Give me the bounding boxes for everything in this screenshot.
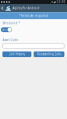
staticText: Scheduled * [2, 21, 19, 25]
staticText: 12:30 [57, 0, 66, 4]
staticText: Job History [9, 52, 24, 56]
button[interactable]: Job History [2, 51, 31, 57]
staticText: * Fields are required [19, 14, 48, 17]
staticText: Agility For Android [12, 6, 39, 10]
staticText: Asset Code [2, 38, 18, 42]
staticText: Outstanding Jobs [37, 52, 61, 56]
button[interactable]: Back [1, 4, 4, 12]
staticText: Yes [2, 28, 6, 31]
button[interactable]: Outstanding Jobs [34, 51, 64, 57]
button[interactable]: Scheduled, Yes [1, 27, 12, 32]
